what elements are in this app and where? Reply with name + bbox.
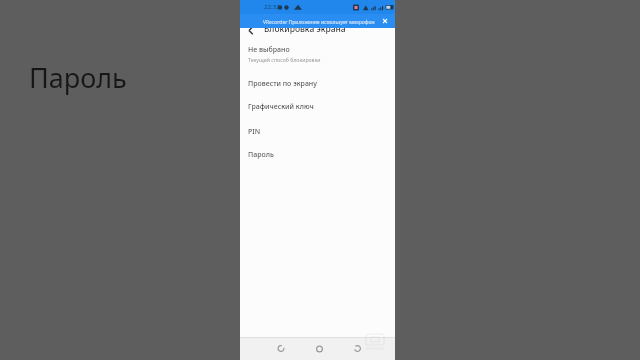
button[interactable]: Провести по экрану [240,75,395,98]
staticText: PIN [248,127,261,137]
button[interactable]: PIN [240,123,395,146]
staticText: VRecorder Приложение использует микрофон [263,19,375,26]
staticText: Блокировка экрана [264,23,346,35]
button[interactable]: Пароль [240,146,395,169]
staticText: Графический ключ [248,102,314,112]
staticText: Текущий способ блокировки [248,56,321,63]
staticText: 22:32 [264,3,280,11]
staticText: Не выбрано [248,45,290,55]
staticText: Пароль [29,59,127,96]
button[interactable]: Графический ключ [240,98,395,121]
button[interactable]: Блокировка экрана [240,23,395,41]
staticText: Провести по экрану [248,79,317,89]
button[interactable]: Не выбрано [240,42,395,70]
button[interactable]: VRecorder Приложение использует микрофон [240,14,395,28]
staticText: Пароль [248,150,274,160]
